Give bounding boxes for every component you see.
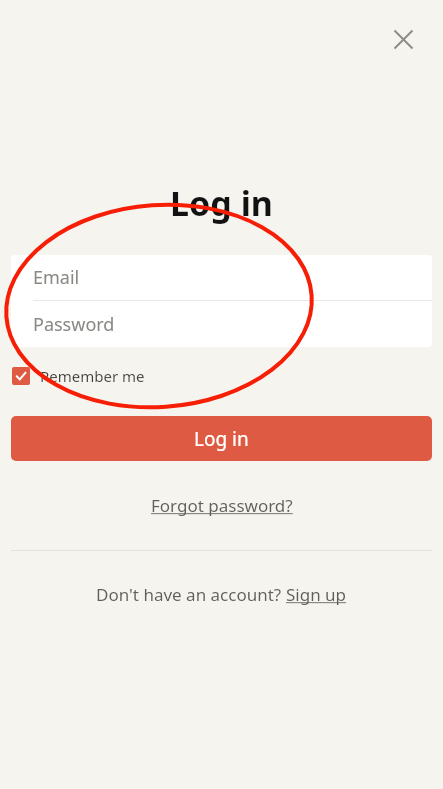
staticText: Log in bbox=[194, 426, 249, 452]
staticText: Forgot password? bbox=[151, 494, 293, 517]
staticText: Don't have an account? bbox=[96, 583, 286, 606]
staticText: Password bbox=[33, 312, 115, 337]
button[interactable]: Close bbox=[379, 15, 427, 63]
button[interactable]: Forgot password? bbox=[145, 490, 299, 521]
button[interactable]: Remember me bbox=[12, 363, 145, 389]
staticText: Log in bbox=[170, 180, 273, 224]
button[interactable]: Email bbox=[11, 255, 432, 300]
button[interactable]: Sign up bbox=[286, 583, 347, 606]
staticText: Sign up bbox=[286, 583, 347, 606]
staticText: Email bbox=[33, 265, 80, 290]
button[interactable]: Log in bbox=[11, 416, 432, 461]
button[interactable]: Password bbox=[11, 301, 432, 347]
staticText: Remember me bbox=[40, 366, 145, 386]
